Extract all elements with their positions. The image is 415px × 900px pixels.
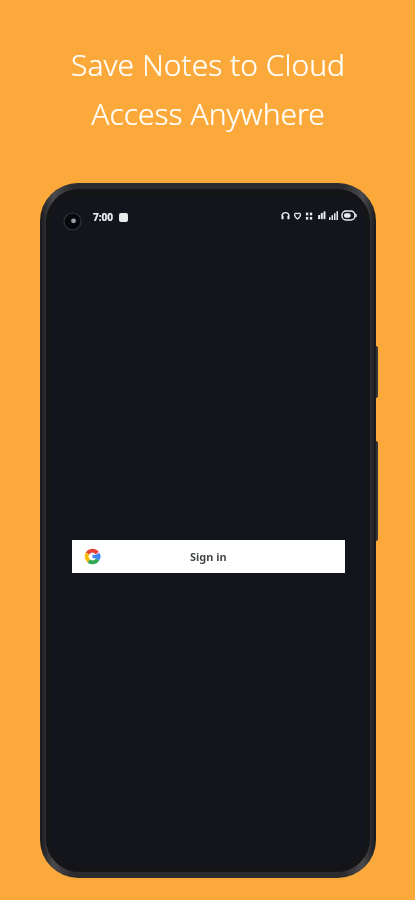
button[interactable]: Sign in <box>72 540 345 573</box>
staticText: 7:00 <box>93 210 113 224</box>
staticText: Access Anywhere <box>91 93 325 134</box>
other: Google <box>84 548 101 565</box>
staticText: Save Notes to Cloud <box>71 44 345 85</box>
staticText: Sign in <box>190 549 227 564</box>
